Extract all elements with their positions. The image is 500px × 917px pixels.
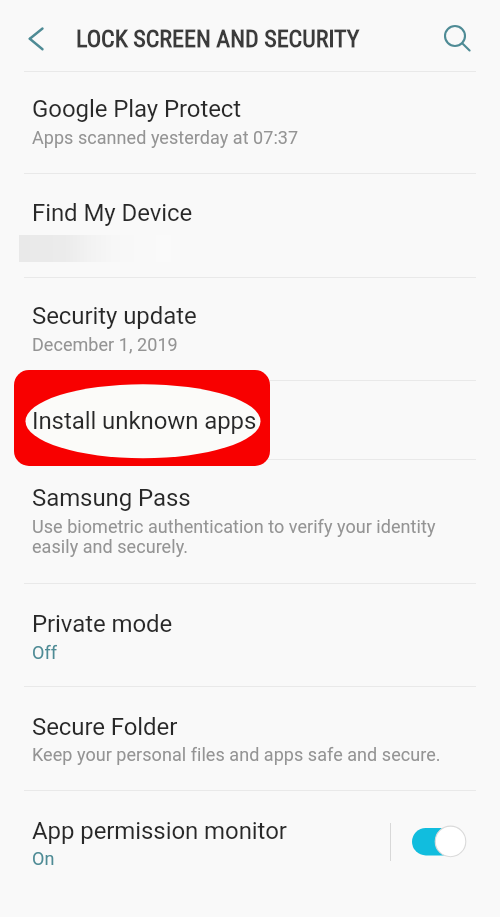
- staticText: December 1, 2019: [32, 334, 178, 355]
- staticText: LOCK SCREEN AND SECURITY: [76, 25, 360, 53]
- staticText: Secure Folder: [32, 713, 178, 741]
- button[interactable]: Private mode: [0, 584, 500, 686]
- button[interactable]: App permission monitor, on: [406, 818, 470, 865]
- button[interactable]: Security update: [0, 278, 500, 380]
- button[interactable]: Find My Device: [0, 174, 500, 277]
- staticText: Security update: [32, 302, 197, 330]
- button[interactable]: Install unknown apps: [0, 381, 500, 459]
- staticText: Off: [32, 642, 58, 663]
- staticText: On: [32, 848, 55, 869]
- staticText: Google Play Protect: [32, 95, 242, 123]
- staticText: App permission monitor: [32, 817, 287, 845]
- button[interactable]: Secure Folder: [0, 687, 500, 790]
- staticText: Keep your personal files and apps safe a…: [32, 744, 441, 765]
- staticText: Install unknown apps: [32, 407, 257, 435]
- button[interactable]: Search: [433, 14, 477, 58]
- staticText: Install unknown apps: [32, 407, 257, 435]
- button[interactable]: Google Play Protect: [0, 72, 500, 173]
- staticText: Samsung Pass: [32, 484, 191, 512]
- button[interactable]: Samsung Pass: [0, 460, 500, 583]
- staticText: Private mode: [32, 610, 173, 638]
- button[interactable]: Navigate up: [13, 16, 59, 56]
- staticText: Apps scanned yesterday at 07:37: [32, 127, 299, 148]
- button[interactable]: App permission monitor: [0, 791, 500, 917]
- staticText: Use biometric authentication to verify y…: [32, 516, 436, 558]
- staticText: Find My Device: [32, 199, 193, 227]
